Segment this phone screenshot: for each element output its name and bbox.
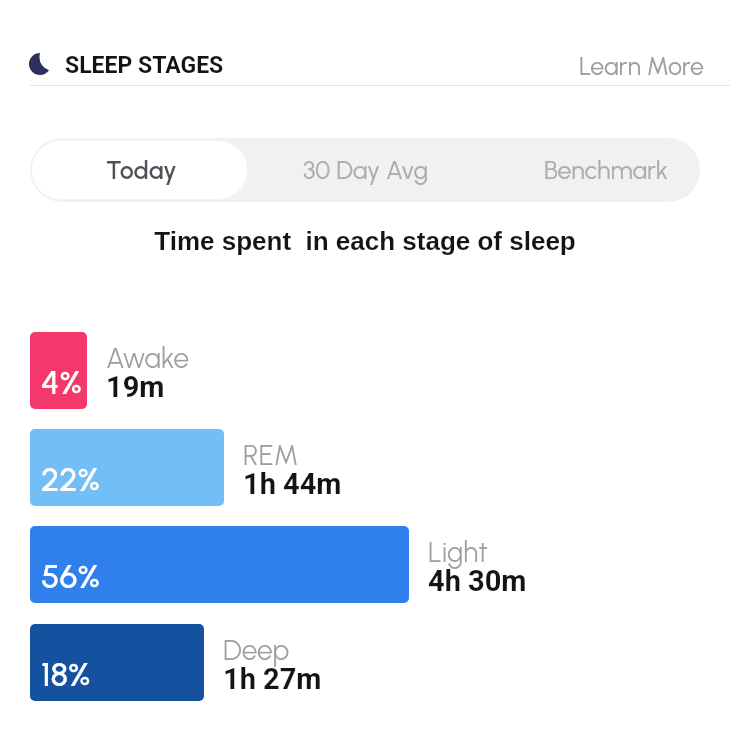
staticText: Time spent in each stage of sleep (0, 226, 730, 255)
staticText: 1h 44m (243, 467, 342, 501)
staticText: 4h 30m (428, 564, 527, 598)
staticText: 1h 27m (223, 662, 322, 696)
button[interactable]: 4% (30, 332, 87, 409)
staticText: Deep (223, 633, 290, 667)
button[interactable]: Today (32, 141, 247, 199)
button[interactable]: 56% (30, 526, 409, 603)
button[interactable]: Sleep (24, 48, 56, 80)
staticText: 56% (41, 557, 100, 597)
staticText: 4% (41, 363, 82, 403)
staticText: Benchmark (544, 155, 668, 185)
button[interactable]: 22% (30, 429, 224, 506)
button[interactable]: 30 Day Avg (253, 138, 478, 202)
button[interactable]: 18% (30, 624, 204, 701)
staticText: Light (428, 535, 488, 569)
staticText: REM (243, 438, 299, 472)
staticText: 22% (41, 460, 101, 500)
staticText: 19m (106, 370, 165, 404)
staticText: Awake (106, 341, 190, 375)
button[interactable]: Benchmark (500, 138, 700, 202)
staticText: SLEEP STAGES (65, 52, 224, 79)
staticText: 30 Day Avg (303, 155, 429, 185)
staticText: 18% (41, 655, 91, 695)
button[interactable]: Learn More (579, 51, 704, 81)
staticText: Today (106, 155, 177, 185)
